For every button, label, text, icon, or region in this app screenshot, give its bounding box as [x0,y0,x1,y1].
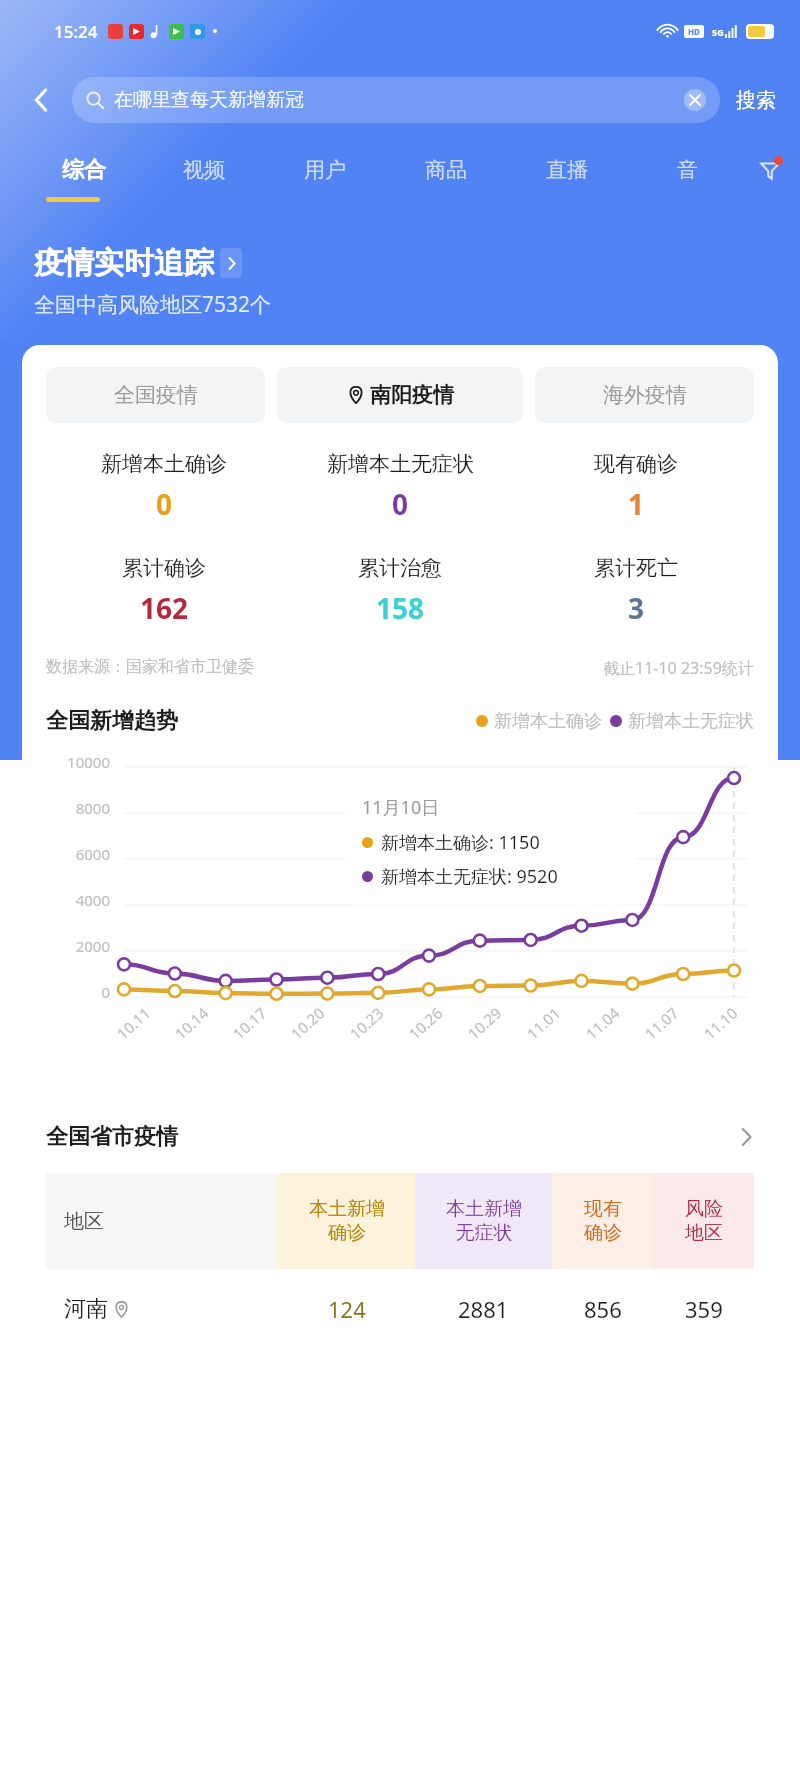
staticText: 疫情实时追踪 [34,244,214,282]
staticText: 3 [628,589,645,627]
staticText: 新增本土确诊 [101,451,227,477]
staticText: 全国中高风险地区7532个 [34,290,272,319]
staticText: 158 [376,589,425,627]
staticText: 本土新增 无症状 [446,1197,522,1245]
staticText: 11.10 [699,1002,742,1043]
staticText: 用户 [304,157,346,183]
staticText: 162 [140,589,189,627]
staticText: 10.14 [170,1002,213,1043]
button[interactable]: 用户 [264,138,385,202]
staticText: 11.07 [640,1002,683,1043]
staticText: 1 [628,485,645,523]
staticText: 新增本土确诊: 1150 [381,830,540,855]
staticText: 地区 [64,1209,104,1234]
staticText: 10.11 [112,1002,155,1043]
staticText: 音 [677,157,698,183]
staticText: 全国疫情 [114,382,198,408]
button[interactable]: 河南 [46,1269,754,1349]
button[interactable]: Clear [684,89,706,111]
button[interactable]: 直播 [506,138,627,202]
staticText: 10.26 [404,1002,447,1043]
staticText: 全国省市疫情 [46,1123,178,1151]
staticText: 在哪里查每天新增新冠 [114,88,304,112]
staticText: 2881 [458,1294,509,1324]
staticText: 商品 [425,157,467,183]
staticText: 0 [46,982,110,1002]
staticText: 359 [685,1294,723,1324]
staticText: 数据来源：国家和省市卫健委 [46,657,254,677]
staticText: 10.17 [228,1002,271,1043]
staticText: 现有 确诊 [584,1197,622,1245]
staticText: 8000 [46,798,110,818]
button[interactable]: 音 [627,138,748,202]
staticText: 本土新增 确诊 [309,1197,385,1245]
staticText: 11月10日 [362,795,440,820]
button[interactable]: Back [20,78,64,122]
staticText: 2000 [46,936,110,956]
staticText: 海外疫情 [603,382,687,408]
staticText: 南阳疫情 [370,382,454,408]
staticText: 风险 地区 [685,1197,723,1245]
staticText: 新增本土无症状 [327,451,474,477]
staticText: 视频 [183,157,225,183]
button[interactable]: 全国疫情 [46,367,265,423]
button[interactable]: 在哪里查每天新增新冠 [72,77,720,123]
staticText: 直播 [546,157,588,183]
staticText: 5G [712,26,724,38]
staticText: 截止11-10 23:59统计 [603,657,754,679]
staticText: 河南 [64,1295,108,1323]
staticText: 6000 [46,844,110,864]
staticText: 综合 [62,156,106,184]
button[interactable]: 综合 [24,138,144,202]
button[interactable]: 疫情实时追踪 [34,244,242,282]
button[interactable]: 全国省市疫情 [46,1123,754,1151]
staticText: 10000 [46,752,110,772]
staticText: 10.23 [345,1002,388,1043]
staticText: 11.04 [581,1002,624,1043]
staticText: 15:24 [54,20,98,43]
staticText: 124 [328,1294,366,1324]
staticText: 856 [584,1294,622,1324]
staticText: 新增本土无症状: 9520 [381,864,558,889]
staticText: 新增本土确诊 [494,710,602,733]
staticText: 0 [392,485,409,523]
staticText: 新增本土无症状 [628,710,754,733]
staticText: 累计治愈 [358,555,442,581]
button[interactable]: Filter [748,138,792,202]
button[interactable]: 南阳疫情 [277,367,523,423]
button[interactable]: 搜索 [732,80,780,121]
staticText: 全国新增趋势 [46,707,178,735]
button[interactable]: 商品 [385,138,506,202]
staticText: 0 [156,485,173,523]
button[interactable]: 海外疫情 [535,367,754,423]
staticText: 现有确诊 [594,451,678,477]
staticText: 累计死亡 [594,555,678,581]
staticText: 11.01 [522,1002,565,1043]
staticText: HD [688,26,700,37]
staticText: 10.20 [286,1002,329,1043]
staticText: 累计确诊 [122,555,206,581]
staticText: 10.29 [463,1002,506,1043]
staticText: 4000 [46,890,110,910]
button[interactable]: 视频 [144,138,264,202]
staticText: 搜索 [736,88,776,113]
